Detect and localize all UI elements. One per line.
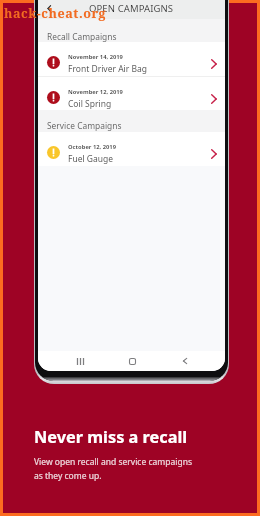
staticText: November 12, 2019 bbox=[68, 88, 123, 96]
button[interactable]: November 12, 2019 bbox=[38, 77, 225, 110]
staticText: OPEN CAMPAIGNS bbox=[89, 2, 174, 15]
staticText: Fuel Gauge bbox=[68, 153, 114, 165]
staticText: October 12, 2019 bbox=[68, 143, 116, 151]
staticText: Never miss a recall bbox=[34, 426, 188, 448]
button[interactable]: Home bbox=[120, 351, 144, 371]
button[interactable]: Recent apps bbox=[68, 351, 92, 371]
staticText: November 14, 2019 bbox=[68, 53, 123, 61]
button[interactable]: Back bbox=[38, 0, 60, 19]
staticText: Recall Campaigns bbox=[47, 31, 117, 42]
button[interactable]: November 14, 2019 bbox=[38, 42, 225, 76]
staticText: View open recall and service campaigns a… bbox=[34, 456, 192, 482]
button[interactable]: October 12, 2019 bbox=[38, 132, 225, 166]
staticText: Service Campaigns bbox=[47, 120, 122, 131]
staticText: Front Driver Air Bag bbox=[68, 63, 148, 75]
button[interactable]: Back bbox=[173, 351, 197, 371]
staticText: Coil Spring bbox=[68, 98, 112, 110]
staticText: hack-cheat.org bbox=[4, 5, 107, 22]
